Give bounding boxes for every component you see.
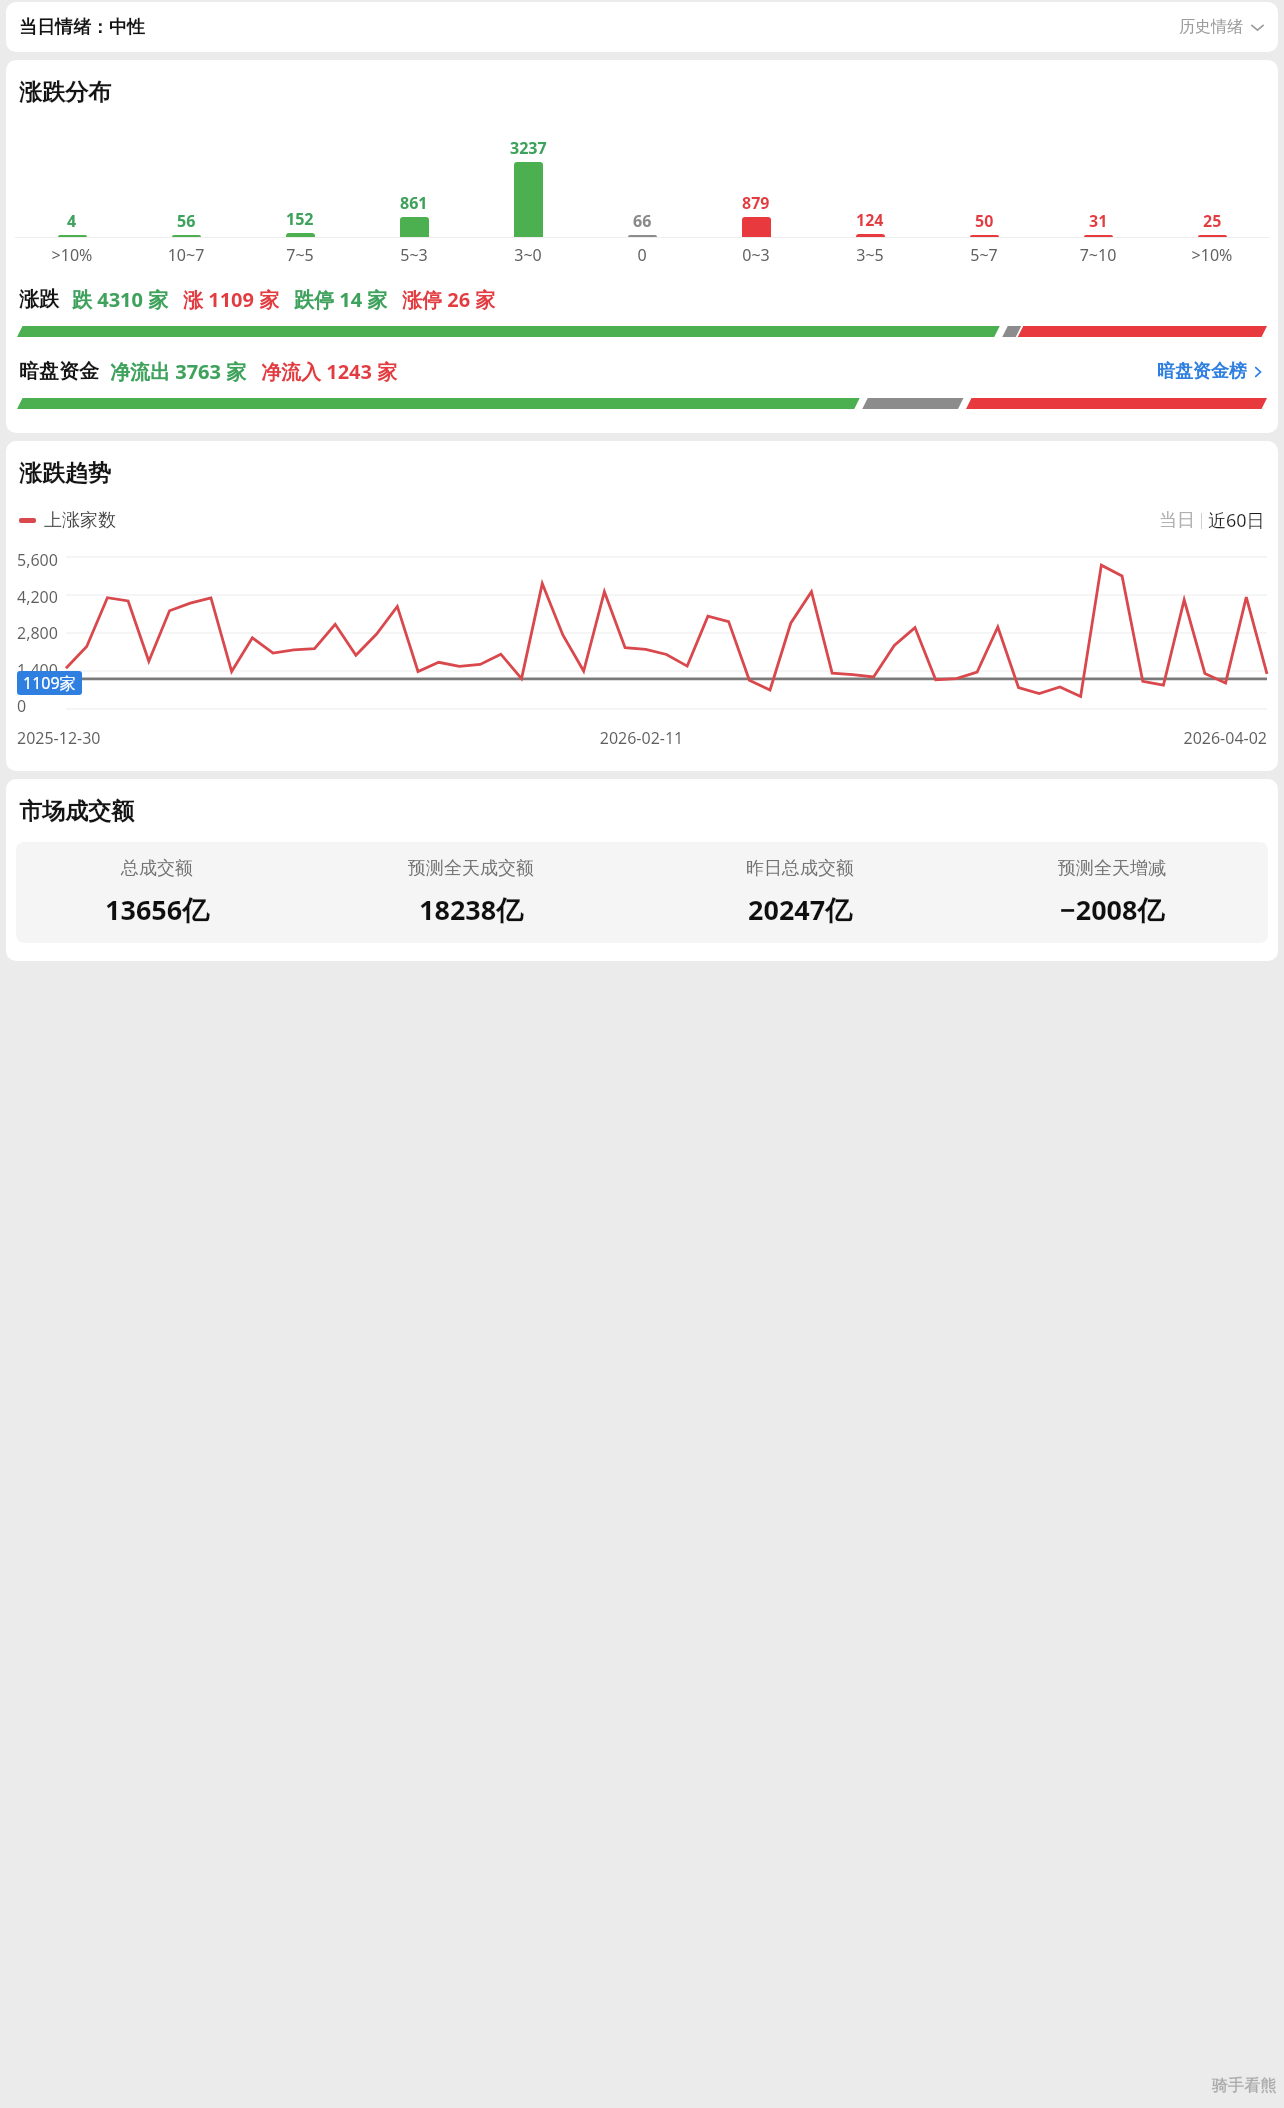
staticText: −2008亿	[1060, 891, 1165, 928]
staticText: 涨跌分布	[19, 78, 111, 107]
staticText: 152	[286, 208, 314, 230]
staticText: 10~7	[129, 244, 243, 266]
other: 展开历史情绪	[1250, 20, 1265, 35]
staticText: 56	[177, 210, 196, 232]
staticText: >10%	[1155, 244, 1269, 266]
staticText: 预测全天增减	[1058, 857, 1166, 880]
staticText: 预测全天成交额	[408, 857, 534, 880]
staticText: 0	[585, 244, 699, 266]
staticText: 31	[1089, 210, 1108, 232]
button[interactable]: 近60日	[1208, 508, 1265, 533]
staticText: 上涨家数	[44, 509, 116, 532]
staticText: 涨 1109 家	[183, 286, 280, 313]
staticText: 4	[67, 210, 77, 232]
staticText: 20247亿	[748, 891, 853, 928]
staticText: 0~3	[699, 244, 813, 266]
staticText: 1,400	[17, 659, 58, 681]
staticText: 124	[856, 209, 884, 231]
staticText: 18238亿	[419, 891, 524, 928]
staticText: 3~0	[471, 244, 585, 266]
staticText: 净流出 3763 家	[110, 358, 247, 385]
staticText: 总成交额	[121, 857, 193, 880]
staticText: 2026-02-11	[433, 727, 850, 749]
staticText: 涨停 26 家	[402, 286, 496, 313]
staticText: 13656亿	[105, 891, 210, 928]
staticText: 骑手看熊	[1212, 2076, 1276, 2096]
staticText: 0	[17, 695, 27, 717]
staticText: 879	[742, 192, 770, 214]
staticText: 涨跌趋势	[19, 459, 111, 488]
staticText: 跌停 14 家	[294, 286, 388, 313]
staticText: 昨日总成交额	[746, 857, 854, 880]
staticText: 4,200	[17, 586, 58, 608]
staticText: 历史情绪	[1179, 17, 1243, 37]
staticText: 5~7	[927, 244, 1041, 266]
button[interactable]: 暗盘资金榜	[1157, 360, 1265, 383]
staticText: 5,600	[17, 549, 58, 571]
staticText: >10%	[15, 244, 129, 266]
staticText: 暗盘资金	[19, 359, 99, 384]
staticText: 跌 4310 家	[72, 286, 169, 313]
staticText: 3237	[510, 137, 547, 159]
staticText: 2026-04-02	[850, 727, 1267, 749]
button[interactable]: 当日情绪：中性	[6, 2, 1278, 52]
staticText: 7~5	[243, 244, 357, 266]
staticText: 当日情绪：中性	[19, 16, 145, 39]
staticText: 净流入 1243 家	[261, 358, 398, 385]
staticText: 暗盘资金榜	[1157, 360, 1247, 383]
staticText: 3~5	[813, 244, 927, 266]
staticText: 1109家	[23, 672, 76, 694]
button[interactable]: 当日	[1159, 509, 1195, 532]
staticText: 涨跌	[19, 287, 59, 312]
staticText: 市场成交额	[19, 797, 134, 826]
staticText: 5~3	[357, 244, 471, 266]
staticText: 861	[400, 192, 428, 214]
staticText: 2025-12-30	[17, 727, 433, 749]
staticText: 50	[975, 210, 994, 232]
staticText: 25	[1203, 210, 1222, 232]
staticText: 2,800	[17, 622, 58, 644]
staticText: 66	[633, 210, 652, 232]
staticText: 7~10	[1041, 244, 1155, 266]
